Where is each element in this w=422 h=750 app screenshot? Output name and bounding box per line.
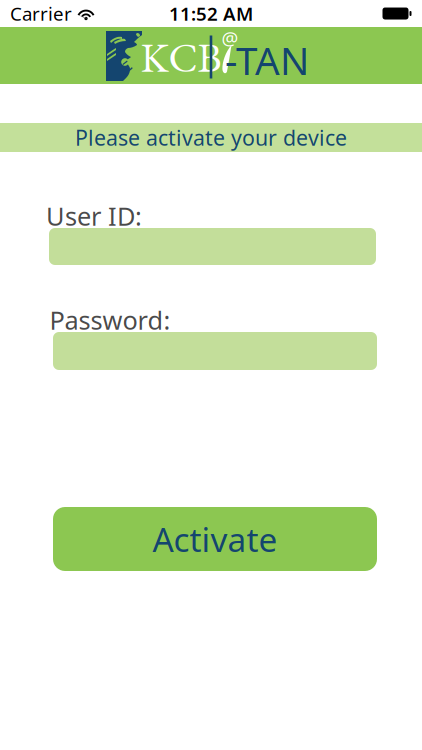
button[interactable]: User ID bbox=[49, 228, 376, 265]
staticText: 11:52 AM bbox=[169, 1, 253, 26]
staticText: User ID: bbox=[46, 199, 142, 233]
staticText: -TAN bbox=[225, 34, 309, 86]
button[interactable]: Password bbox=[53, 332, 377, 370]
staticText: Carrier bbox=[10, 1, 72, 26]
staticText: KCB bbox=[140, 30, 221, 84]
staticText: Password: bbox=[49, 303, 170, 337]
staticText: @ bbox=[221, 26, 238, 50]
staticText: Please activate your device bbox=[75, 123, 347, 152]
button[interactable]: Activate bbox=[53, 507, 377, 571]
staticText: Activate bbox=[152, 517, 277, 561]
